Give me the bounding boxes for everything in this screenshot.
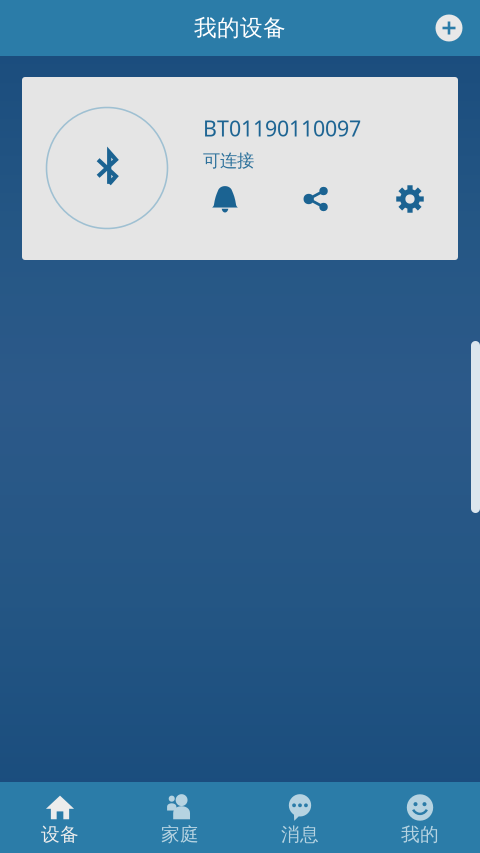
button[interactable]: 我的 bbox=[360, 782, 480, 853]
staticText: BT01190110097 bbox=[203, 114, 361, 142]
staticText: 设备 bbox=[41, 823, 79, 846]
button[interactable]: 设备 bbox=[0, 782, 120, 853]
button[interactable]: 家庭 bbox=[120, 782, 240, 853]
staticText: 我的 bbox=[401, 823, 439, 846]
button[interactable]: Settings bbox=[379, 174, 441, 224]
button[interactable]: Add device bbox=[423, 2, 475, 54]
staticText: 家庭 bbox=[161, 823, 199, 846]
button[interactable]: Share bbox=[285, 174, 347, 224]
staticText: 我的设备 bbox=[194, 14, 286, 42]
staticText: 消息 bbox=[281, 823, 319, 846]
button[interactable]: 消息 bbox=[240, 782, 360, 853]
button[interactable]: Alarm bbox=[194, 174, 256, 224]
staticText: 可连接 bbox=[203, 150, 254, 171]
